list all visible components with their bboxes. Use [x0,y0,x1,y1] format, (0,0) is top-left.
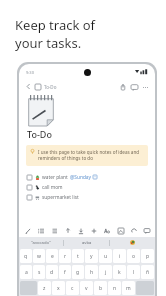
staticText: Keep track of [15,16,96,34]
staticText: To-Do [27,128,52,140]
button[interactable]: Format tool 6 [88,225,99,236]
button[interactable]: supermarket list [19,192,155,202]
button[interactable]: Emoji suggestion [110,237,155,248]
button[interactable]: y [85,249,98,263]
button[interactable]: m [122,281,135,295]
staticText: 9:30 [26,70,34,75]
staticText: o [132,253,136,260]
staticText: w [37,253,41,260]
button[interactable]: More options [140,82,150,92]
staticText: z [43,285,46,292]
staticText: your tasks. [15,34,82,52]
button[interactable]: Format tool 3 [48,225,59,236]
button[interactable]: d [46,265,58,279]
staticText: y [90,253,93,260]
button[interactable]: g [72,265,84,279]
button[interactable]: b [94,281,107,295]
staticText: supermarket list [42,194,79,201]
staticText: j [105,269,107,276]
button[interactable]: t [72,249,84,263]
button[interactable]: i [113,249,126,263]
staticText: "avocado" [31,240,51,246]
button[interactable]: u [99,249,112,263]
staticText: r [64,253,67,260]
button[interactable]: water plant [19,172,155,182]
button[interactable]: Format tool 4 [62,225,73,236]
button[interactable]: Format tool 5 [75,225,86,236]
staticText: u [104,253,108,260]
button[interactable]: l [127,265,140,279]
staticText: g [76,269,80,276]
button[interactable]: Format tool 10 [141,225,152,236]
staticText: c [71,285,74,292]
staticText: To-Do [44,84,57,90]
button[interactable]: e [46,249,58,263]
button[interactable]: a [20,265,32,279]
button[interactable]: o [127,249,140,263]
button[interactable]: Format tool 7 [101,225,112,236]
button[interactable]: j [99,265,112,279]
button[interactable]: Format tool 9 [128,225,139,236]
staticText: v [85,285,88,292]
staticText: ñ [146,269,150,276]
button[interactable]: k [113,265,126,279]
staticText: b [99,285,103,292]
staticText: q [24,253,28,260]
button[interactable]: c [66,281,79,295]
button[interactable]: n [108,281,121,295]
staticText: i [119,253,121,260]
button[interactable]: Back [24,82,33,91]
staticText: l [133,269,135,276]
staticText: I use this page to take quick notes of i… [38,149,144,162]
button[interactable]: v [80,281,93,295]
staticText: m [126,285,131,292]
button[interactable]: w [33,249,45,263]
staticText: a [25,269,28,276]
button[interactable]: Format tool 8 [115,225,126,236]
button[interactable]: Format tool 1 [22,225,33,236]
staticText: p [146,253,150,260]
staticText: x [57,285,60,292]
staticText: water plant [42,174,68,181]
button[interactable]: f [59,265,71,279]
button[interactable]: q [20,249,32,263]
button[interactable]: Share [118,82,128,92]
button[interactable]: call mom [19,182,155,192]
staticText: k [118,269,121,276]
staticText: s [38,269,41,276]
button[interactable]: r [59,249,71,263]
button[interactable]: h [85,265,98,279]
button[interactable]: p [141,249,154,263]
button[interactable]: z [38,281,51,295]
staticText: f [64,269,66,276]
staticText: t [77,253,79,260]
button[interactable]: Format tool 2 [35,225,46,236]
staticText: avba [82,240,92,246]
staticText: @Sunday [70,174,91,181]
button[interactable]: I use this page to take quick notes of i… [26,145,148,166]
staticText: n [113,285,117,292]
button[interactable]: Comment [129,82,139,92]
staticText: h [90,269,94,276]
staticText: e [51,253,54,260]
staticText: call mom [42,184,63,191]
staticText: d [50,269,54,276]
button[interactable]: ñ [141,265,154,279]
button[interactable]: s [33,265,45,279]
button[interactable]: x [52,281,65,295]
button[interactable]: avba [64,237,109,248]
button[interactable]: "avocado" [19,237,63,248]
